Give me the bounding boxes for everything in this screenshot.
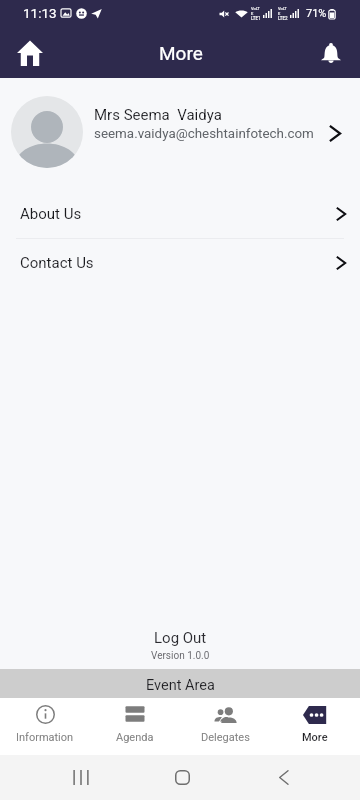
staticText: Mrs Seema Vaidya [94,106,222,124]
staticText: Delegates [201,731,250,744]
button[interactable]: Agenda [90,698,180,755]
button[interactable]: Home [158,761,206,794]
button[interactable]: Notifications [310,32,352,74]
staticText: LTE2 [278,16,288,21]
staticText: About Us [20,205,336,223]
button[interactable]: Contact Us [0,239,360,287]
button[interactable]: Information [0,698,90,755]
staticText: More [159,42,203,64]
staticText: Contact Us [20,254,336,272]
staticText: Log Out [154,629,207,647]
button[interactable]: More [270,698,360,755]
staticText: LTE1 [251,16,261,21]
staticText: VoLTE [251,6,261,16]
button[interactable]: Home [9,32,51,74]
staticText: 11:13 [23,5,57,21]
staticText: seema.vaidya@cheshtainfotech.com [94,126,314,142]
button[interactable]: About Us [0,190,360,238]
button[interactable]: Log Out [130,627,231,649]
button[interactable]: Recent apps [57,761,105,794]
staticText: More [302,731,328,744]
staticText: VoLTE [278,6,288,16]
staticText: Version 1.0.0 [151,650,210,662]
staticText: Information [16,731,74,744]
staticText: Event Area [146,677,215,694]
button[interactable]: Mrs Seema Vaidya [0,78,360,190]
button[interactable]: Back [259,761,307,794]
staticText: Agenda [116,731,154,744]
staticText: 71% [306,7,327,20]
button[interactable]: Delegates [180,698,270,755]
